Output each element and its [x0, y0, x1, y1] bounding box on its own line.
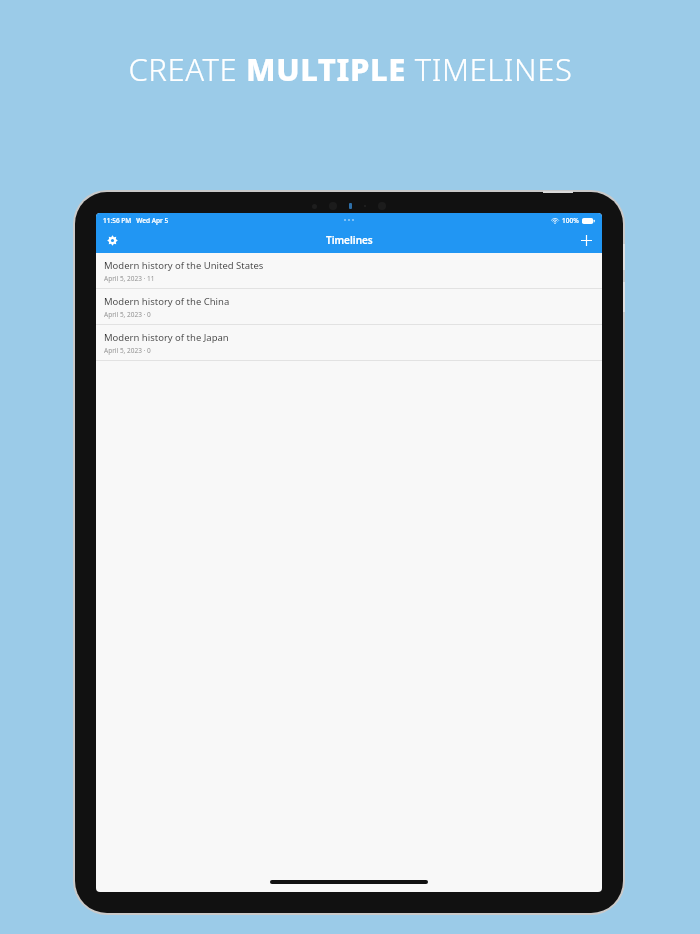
button[interactable]: Modern history of the China — [96, 289, 602, 324]
staticText: Modern history of the Japan — [104, 331, 229, 344]
staticText: April 5, 2023 · 0 — [104, 310, 151, 319]
staticText: 100% — [562, 216, 579, 225]
button[interactable]: Add timeline — [575, 229, 597, 251]
staticText: April 5, 2023 · 11 — [104, 274, 155, 283]
staticText: 11:56 PM Wed Apr 5 — [103, 216, 169, 225]
button[interactable]: Modern history of the United States — [96, 253, 602, 288]
staticText: Modern history of the China — [104, 295, 230, 308]
button[interactable]: Modern history of the Japan — [96, 325, 602, 360]
button[interactable]: Settings — [101, 229, 123, 251]
staticText: April 5, 2023 · 0 — [104, 346, 151, 355]
staticText: Timelines — [326, 233, 373, 247]
staticText: CREATE MULTIPLE TIMELINES — [128, 48, 573, 90]
staticText: Modern history of the United States — [104, 259, 264, 272]
